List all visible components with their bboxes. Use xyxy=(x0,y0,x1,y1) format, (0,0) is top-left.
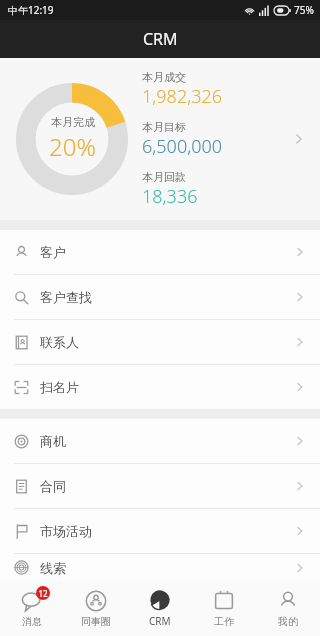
staticText: 联系人 xyxy=(40,334,292,350)
button[interactable]: 客户查找 xyxy=(0,275,320,320)
button[interactable]: 同事圈 xyxy=(64,581,128,636)
staticText: 6,500,000 xyxy=(142,134,223,159)
staticText: 扫名片 xyxy=(40,379,292,395)
staticText: CRM xyxy=(149,614,171,628)
button[interactable]: CRM xyxy=(128,581,192,636)
button[interactable]: 合同 xyxy=(0,464,320,509)
staticText: 市场活动 xyxy=(40,523,292,539)
staticText: 1,982,326 xyxy=(142,84,223,109)
button[interactable]: 市场活动 xyxy=(0,509,320,554)
button[interactable]: 12 xyxy=(0,581,64,636)
button[interactable]: 商机 xyxy=(0,419,320,464)
button[interactable]: 线索 xyxy=(0,554,320,581)
button[interactable]: 扫名片 xyxy=(0,365,320,409)
button[interactable]: 我的 xyxy=(256,581,320,636)
staticText: CRM xyxy=(143,28,178,50)
staticText: 工作 xyxy=(214,615,234,628)
button[interactable]: 客户 xyxy=(0,230,320,275)
staticText: 75% xyxy=(294,3,314,17)
button[interactable]: 本月完成 xyxy=(0,58,320,220)
staticText: 本月完成 xyxy=(51,115,95,129)
staticText: 线索 xyxy=(40,560,292,576)
staticText: 本月成交 xyxy=(142,70,186,84)
button[interactable]: 联系人 xyxy=(0,320,320,365)
staticText: 客户 xyxy=(40,244,292,260)
staticText: 12 xyxy=(38,588,48,599)
staticText: 20% xyxy=(49,130,96,163)
staticText: 合同 xyxy=(40,478,292,494)
staticText: 同事圈 xyxy=(81,615,111,628)
button[interactable]: 工作 xyxy=(192,581,256,636)
staticText: 18,336 xyxy=(142,184,198,209)
staticText: 我的 xyxy=(278,615,298,628)
staticText: 客户查找 xyxy=(40,289,292,305)
staticText: 本月回款 xyxy=(142,170,186,184)
staticText: 本月目标 xyxy=(142,120,186,134)
staticText: 中午12:19 xyxy=(8,3,54,17)
staticText: 消息 xyxy=(22,615,42,628)
staticText: 商机 xyxy=(40,433,292,449)
